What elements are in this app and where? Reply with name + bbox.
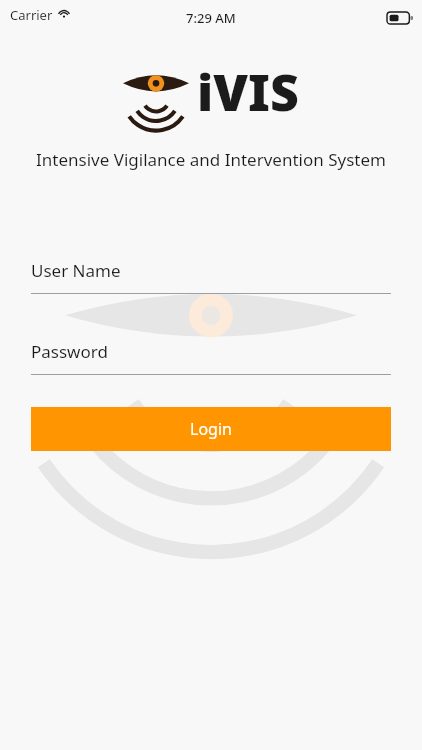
staticText: iVIS [197, 58, 299, 126]
staticText: Carrier [10, 6, 53, 24]
staticText: Password [31, 340, 108, 363]
staticText: Login [190, 418, 232, 440]
staticText: Intensive Vigilance and Intervention Sys… [12, 148, 410, 171]
other: iVIS logo [0, 58, 422, 126]
button[interactable]: Password [31, 340, 391, 375]
staticText: User Name [31, 259, 121, 282]
button[interactable]: Login [31, 407, 391, 451]
staticText: 7:29 AM [186, 9, 236, 27]
button[interactable]: User Name [31, 259, 391, 294]
